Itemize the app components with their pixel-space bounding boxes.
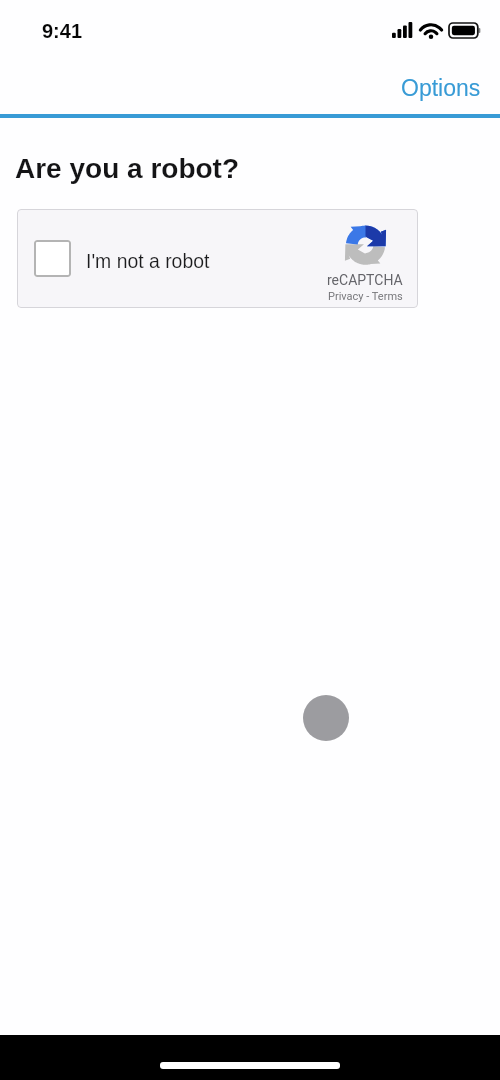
button[interactable]: Loading indicator — [303, 695, 349, 741]
button[interactable]: Options — [379, 66, 500, 110]
button[interactable]: I'm not a robot checkbox — [17, 209, 418, 308]
staticText: 9:41 — [42, 20, 83, 42]
staticText: Privacy - Terms — [328, 290, 403, 303]
staticText: I'm not a robot — [86, 250, 210, 272]
staticText: Are you a robot? — [15, 153, 240, 184]
staticText: Options — [401, 75, 481, 101]
staticText: reCAPTCHA — [327, 272, 403, 288]
button[interactable]: I'm not a robot checkbox — [34, 240, 71, 277]
